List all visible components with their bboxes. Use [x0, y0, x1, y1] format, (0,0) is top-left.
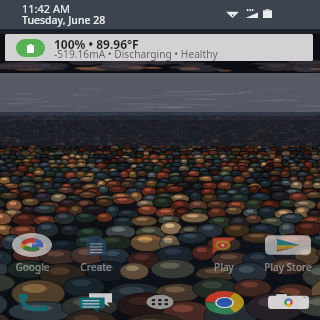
- staticText: -519.16mA • Discharging • Healthy: [54, 47, 218, 61]
- staticText: 100% • 89.96°F: [54, 36, 139, 52]
- staticText: Play Store: [264, 260, 312, 274]
- button[interactable]: Google: [0, 232, 64, 274]
- staticText: Google: [15, 260, 50, 274]
- staticText: Create: [80, 260, 112, 274]
- staticText: 11:42 AM: [22, 1, 70, 16]
- staticText: Play: [214, 260, 234, 274]
- staticText: Tuesday, June 28: [22, 13, 106, 27]
- button[interactable]: All apps: [128, 289, 192, 315]
- button[interactable]: 100% • 89.96°F: [5, 34, 313, 61]
- button[interactable]: Create: [64, 232, 128, 274]
- button[interactable]: Camera: [256, 289, 320, 315]
- button[interactable]: Play: [192, 232, 256, 274]
- button[interactable]: Phone: [0, 289, 64, 315]
- button[interactable]: Messages: [64, 289, 128, 315]
- button[interactable]: Play Store: [256, 232, 320, 274]
- button[interactable]: Chrome: [192, 289, 256, 315]
